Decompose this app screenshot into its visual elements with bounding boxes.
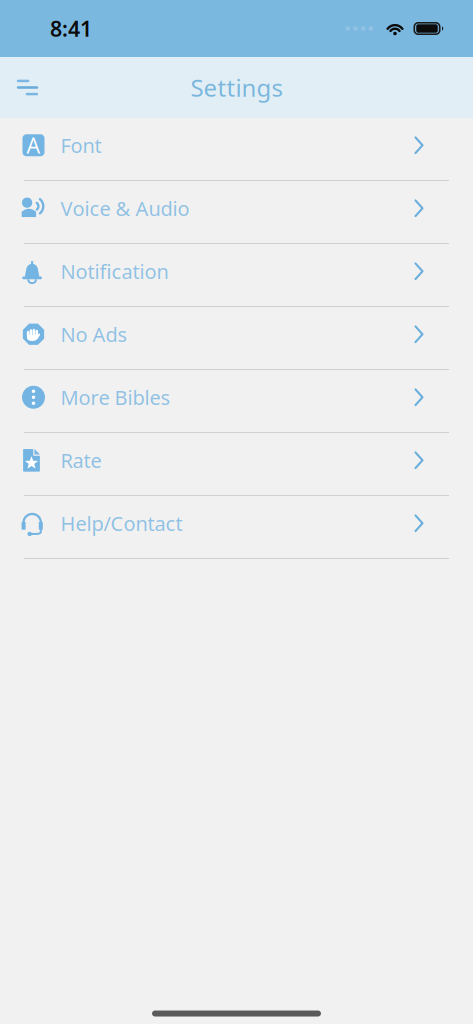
- button[interactable]: Help/Contact: [0, 496, 473, 559]
- button[interactable]: A: [0, 118, 473, 181]
- staticText: Notification: [60, 258, 168, 285]
- staticText: A: [26, 131, 40, 159]
- staticText: Font: [60, 132, 101, 159]
- button[interactable]: More Bibles: [0, 370, 473, 433]
- staticText: Rate: [60, 447, 101, 474]
- staticText: No Ads: [60, 321, 127, 348]
- staticText: More Bibles: [60, 384, 170, 411]
- staticText: Voice & Audio: [60, 195, 189, 222]
- staticText: Settings: [190, 72, 282, 103]
- staticText: Help/Contact: [60, 510, 182, 537]
- button[interactable]: No Ads: [0, 307, 473, 370]
- staticText: 8:41: [50, 14, 92, 43]
- button[interactable]: Menu: [6, 67, 49, 107]
- button[interactable]: Voice & Audio: [0, 181, 473, 244]
- button[interactable]: Notification: [0, 244, 473, 307]
- button[interactable]: Rate: [0, 433, 473, 496]
